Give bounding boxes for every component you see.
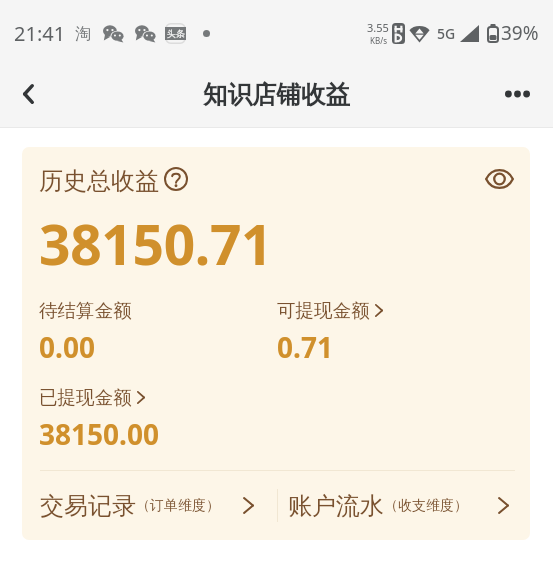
staticText: 0.71	[277, 328, 333, 366]
staticText: 0.00	[39, 328, 95, 366]
staticText: 3.55	[367, 20, 389, 35]
staticText: 21:41	[14, 20, 66, 47]
staticText: 淘	[75, 24, 91, 44]
button[interactable]: 可提现金额	[273, 295, 387, 326]
staticText: 历史总收益	[39, 166, 159, 196]
staticText: （收支维度）	[384, 497, 468, 515]
staticText: 交易记录	[40, 491, 136, 521]
button[interactable]: 交易记录	[22, 471, 277, 540]
button[interactable]: More options	[491, 68, 543, 120]
staticText: 38150.71	[39, 206, 273, 281]
staticText: 账户流水	[288, 491, 384, 521]
staticText: KB/s	[370, 35, 387, 46]
staticText: 可提现金额	[277, 299, 370, 322]
button[interactable]: Toggle amount visibility	[481, 161, 517, 197]
staticText: 待结算金额	[39, 299, 132, 322]
button[interactable]: 已提现金额	[35, 382, 149, 413]
staticText: 5G	[437, 24, 456, 43]
staticText: 39%	[501, 20, 539, 46]
staticText: 38150.00	[39, 415, 159, 453]
staticText: 知识店铺收益	[203, 79, 350, 110]
button[interactable]: Help	[162, 165, 190, 193]
staticText: （订单维度）	[136, 497, 220, 515]
staticText: 头条	[167, 28, 185, 39]
button[interactable]: 账户流水	[278, 471, 530, 540]
staticText: 已提现金额	[39, 386, 132, 409]
button[interactable]: Back	[2, 68, 54, 120]
